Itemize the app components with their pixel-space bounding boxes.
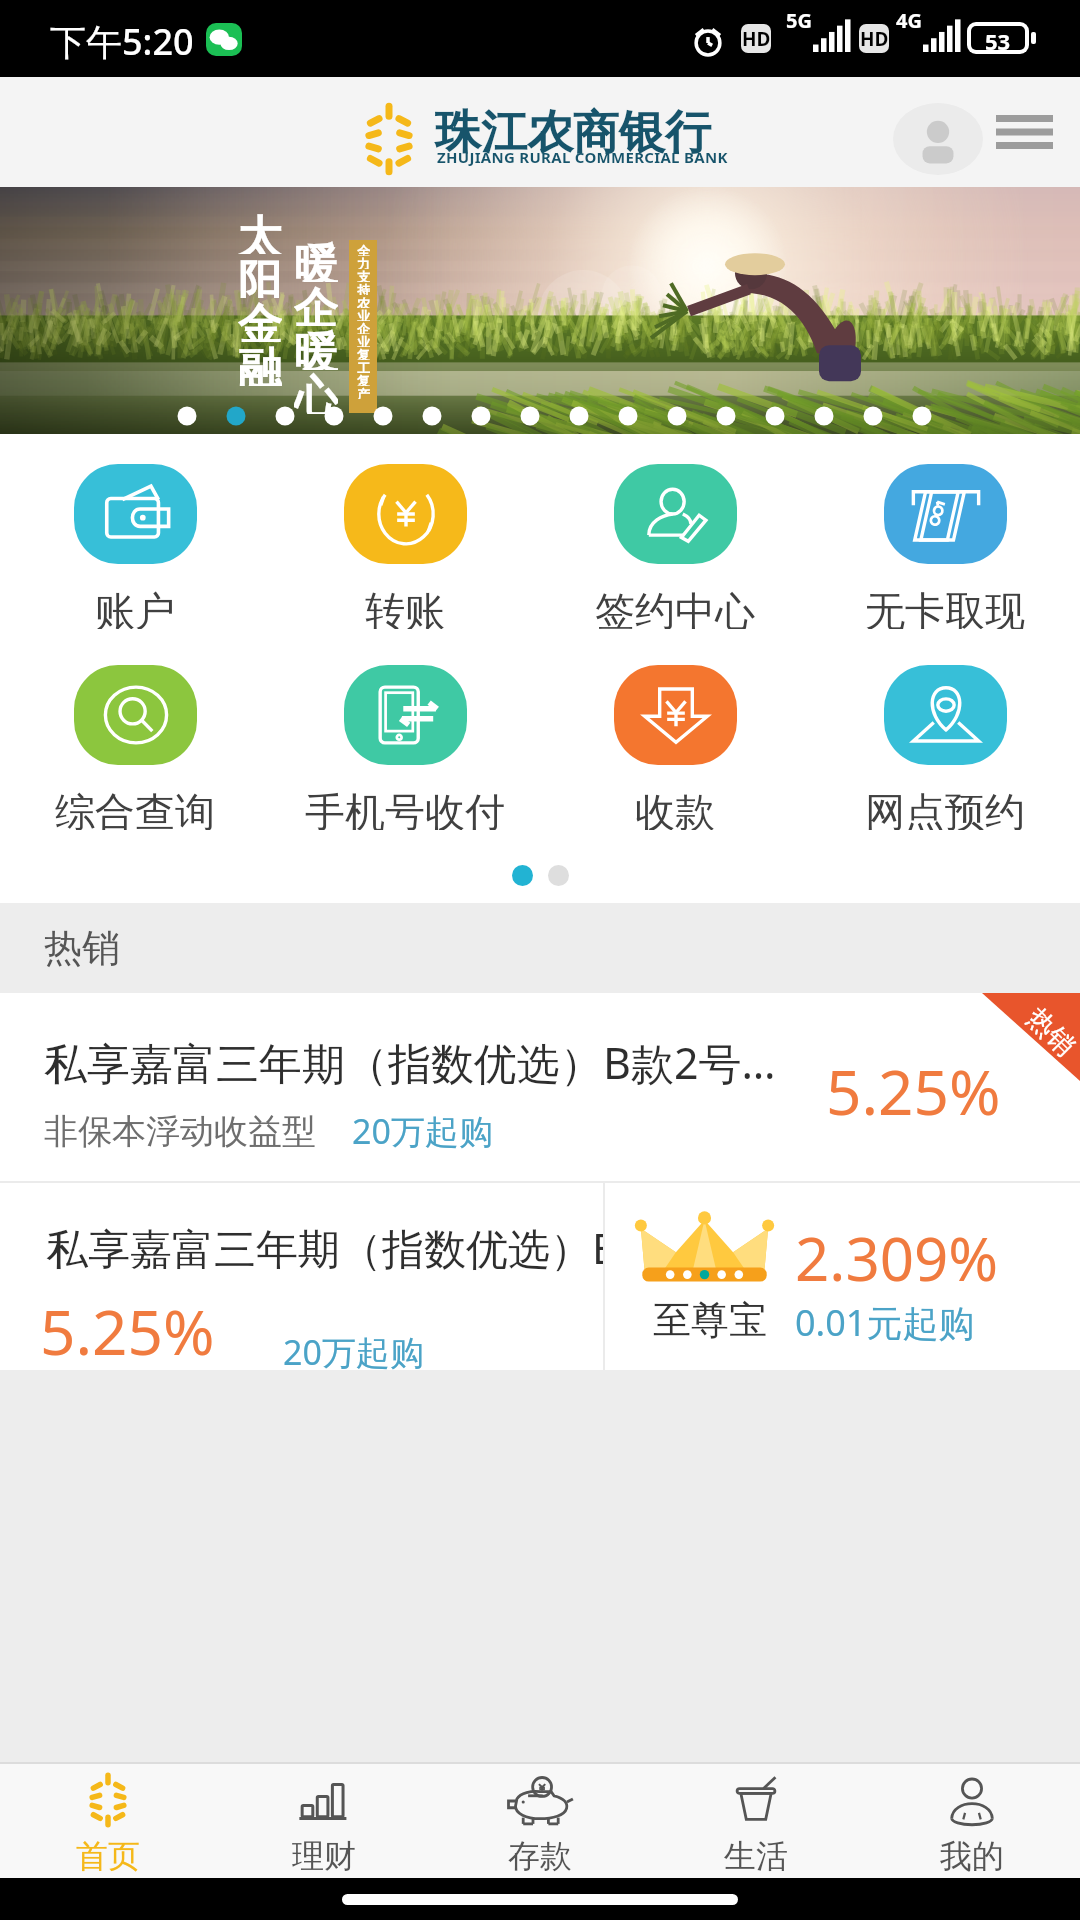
staticText: 转账 — [365, 586, 445, 629]
staticText: 产 — [357, 386, 370, 399]
staticText: 20万起购 — [352, 1108, 493, 1154]
staticText: 存款 — [508, 1836, 572, 1876]
staticText: 2.309% — [795, 1217, 999, 1299]
staticText: 生活 — [724, 1836, 788, 1876]
staticText: 私享嘉富三年期（指数优选）B款2号… — [44, 1033, 776, 1092]
staticText: HD — [860, 26, 889, 52]
button[interactable]: 签约中心 — [540, 464, 810, 629]
staticText: 工 — [357, 360, 370, 373]
staticText: 热销 — [44, 924, 120, 972]
button[interactable]: 转账 — [270, 464, 540, 629]
button[interactable]: 首页 — [0, 1764, 216, 1878]
staticText: 暖 — [294, 326, 338, 370]
button[interactable]: 私享嘉富三年期（指数优选）B款2号… — [0, 993, 1080, 1181]
staticText: 0.01元起购 — [795, 1298, 975, 1347]
button[interactable]: 网点预约 — [810, 665, 1080, 830]
staticText: 签约中心 — [595, 586, 755, 629]
button[interactable]: 综合查询 — [0, 665, 270, 830]
staticText: 金 — [238, 298, 282, 342]
staticText: 复 — [357, 347, 370, 360]
button[interactable]: 我的 — [864, 1764, 1080, 1878]
staticText: 5.25% — [826, 1049, 1001, 1133]
staticText: 阳 — [238, 254, 282, 298]
button[interactable]: 账户 — [0, 464, 270, 629]
staticText: HD — [742, 26, 771, 52]
staticText: 农 — [357, 295, 370, 308]
staticText: 业 — [357, 308, 370, 321]
staticText: 热销 — [1020, 1001, 1080, 1063]
staticText: 珠江农商银行 — [435, 104, 711, 162]
button[interactable]: 2.309% — [603, 1183, 1080, 1370]
staticText: 复 — [357, 373, 370, 386]
staticText: 非保本浮动收益型 — [44, 1110, 316, 1153]
staticText: 收款 — [635, 787, 715, 830]
staticText: 持 — [357, 282, 370, 295]
staticText: 企 — [357, 321, 370, 334]
button[interactable]: 私享嘉富三年期（指数优选）B… — [0, 1183, 603, 1370]
staticText: 4G — [896, 7, 922, 34]
staticText: 力 — [357, 256, 370, 269]
button[interactable]: Profile — [893, 103, 983, 175]
staticText: 暖 — [294, 238, 338, 282]
button[interactable]: Menu — [988, 101, 1060, 163]
staticText: 5G — [786, 7, 812, 34]
staticText: 5.25% — [40, 1289, 215, 1370]
staticText: 至尊宝 — [653, 1296, 767, 1344]
staticText: 理财 — [292, 1836, 356, 1876]
staticText: 业 — [357, 334, 370, 347]
staticText: 无卡取现 — [865, 586, 1025, 629]
staticText: 企 — [294, 282, 338, 326]
staticText: 账户 — [95, 586, 175, 629]
staticText: 我的 — [940, 1836, 1004, 1876]
staticText: 支 — [357, 269, 370, 282]
staticText: 下午5:20 — [50, 17, 194, 66]
staticText: 53 — [985, 26, 1011, 50]
button[interactable]: 生活 — [648, 1764, 864, 1878]
staticText: 私享嘉富三年期（指数优选）B… — [46, 1219, 603, 1276]
staticText: 手机号收付 — [305, 787, 505, 830]
staticText: 太 — [238, 210, 282, 254]
staticText: 融 — [238, 342, 282, 386]
button[interactable]: 无卡取现 — [810, 464, 1080, 629]
staticText: 网点预约 — [865, 787, 1025, 830]
staticText: 首页 — [76, 1836, 140, 1876]
staticText: 综合查询 — [55, 787, 215, 830]
button[interactable]: 手机号收付 — [270, 665, 540, 830]
button[interactable]: 收款 — [540, 665, 810, 830]
button[interactable]: 理财 — [216, 1764, 432, 1878]
staticText: ZHUJIANG RURAL COMMERCIAL BANK — [437, 147, 728, 167]
staticText: 心 — [294, 370, 338, 414]
staticText: 20万起购 — [283, 1329, 424, 1370]
button[interactable]: 存款 — [432, 1764, 648, 1878]
staticText: 全 — [357, 243, 370, 256]
